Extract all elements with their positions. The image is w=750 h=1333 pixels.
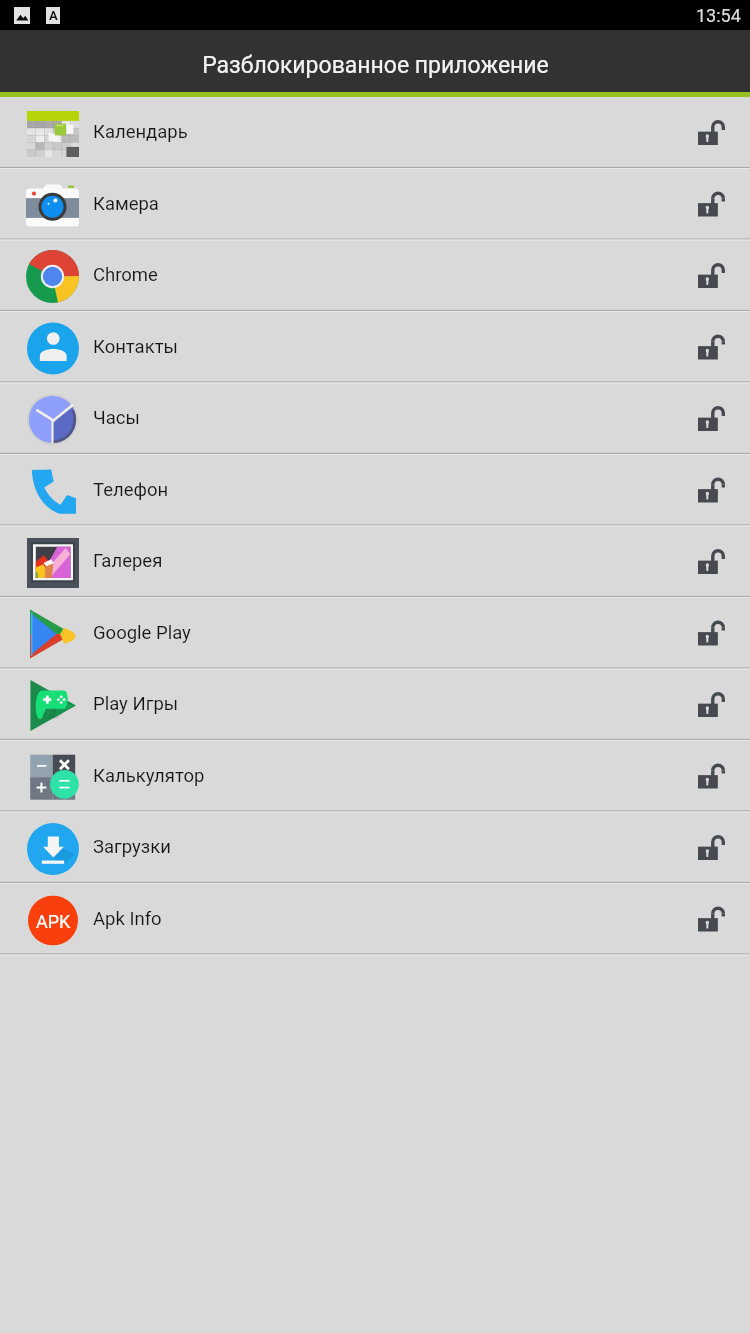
button[interactable]: Play Игры [0,669,750,741]
button[interactable]: Unlocked — tap to lock Загрузки [689,826,733,870]
staticText: Контакты [93,335,178,357]
staticText: A [49,8,58,23]
staticText: Разблокированное приложение [202,52,549,79]
button[interactable]: Камера [0,168,750,240]
button[interactable]: Загрузки [0,812,750,884]
button[interactable]: Часы [0,383,750,455]
button[interactable]: Unlocked — tap to lock Apk Info [689,897,733,941]
staticText: 13:54 [696,5,741,26]
button[interactable]: Unlocked — tap to lock Google Play [689,611,733,655]
button[interactable]: Контакты [0,311,750,383]
button[interactable]: Unlocked — tap to lock Календарь [689,111,733,155]
staticText: Play Игры [93,693,179,715]
button[interactable]: Календарь [0,97,750,169]
staticText: Галерея [93,550,163,572]
button[interactable]: Google Play [0,597,750,669]
button[interactable]: Галерея [0,526,750,598]
button[interactable]: Chrome [0,240,750,312]
button[interactable]: Unlocked — tap to lock Play Игры [689,683,733,727]
button[interactable]: APK [0,883,750,955]
staticText: Google Play [93,621,191,643]
staticText: Календарь [93,121,188,143]
button[interactable]: Unlocked — tap to lock Галерея [689,540,733,584]
staticText: Часы [93,407,140,429]
button[interactable]: Unlocked — tap to lock Контакты [689,325,733,369]
staticText: Телефон [93,478,169,500]
staticText: Chrome [93,264,158,286]
button[interactable]: Unlocked — tap to lock Калькулятор [689,754,733,798]
staticText: Калькулятор [93,764,205,786]
button[interactable]: Калькулятор [0,740,750,812]
staticText: Загрузки [93,836,171,858]
button[interactable]: Unlocked — tap to lock Часы [689,397,733,441]
button[interactable]: Unlocked — tap to lock Chrome [689,254,733,298]
staticText: APK [36,910,71,931]
staticText: Камера [93,192,159,214]
button[interactable]: Unlocked — tap to lock Камера [689,182,733,226]
button[interactable]: Unlocked — tap to lock Телефон [689,468,733,512]
button[interactable]: Телефон [0,454,750,526]
staticText: Apk Info [93,907,162,929]
